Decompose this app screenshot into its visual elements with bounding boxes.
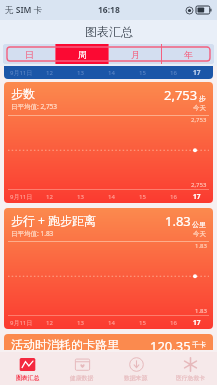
staticText: 无 SIM 卡 — [5, 4, 43, 16]
button[interactable]: 步行 + 跑步距离 — [4, 208, 213, 329]
staticText: 2,753 — [191, 181, 207, 189]
button[interactable]: 健康数据 — [55, 352, 109, 385]
staticText: 17 — [193, 318, 201, 327]
staticText: 千卡 — [192, 340, 206, 349]
staticText: 健康数据 — [70, 374, 94, 381]
staticText: 日平均值: 1.83 — [11, 229, 54, 238]
staticText: 9月11日 — [10, 193, 33, 201]
staticText: 12 — [46, 69, 53, 77]
staticText: 15 — [139, 319, 146, 327]
staticText: 12 — [46, 319, 53, 327]
staticText: 月 — [131, 49, 140, 60]
staticText: 15 — [139, 193, 146, 201]
staticText: 1.83 — [195, 242, 207, 250]
staticText: 2,753 — [191, 116, 207, 124]
staticText: 17 — [193, 68, 201, 77]
staticText: 步行 + 跑步距离 — [11, 212, 97, 228]
staticText: 1.83 — [165, 212, 191, 230]
button[interactable]: 年 — [162, 44, 214, 64]
staticText: 14 — [108, 193, 115, 201]
staticText: 16:18 — [98, 4, 120, 16]
staticText: 今天 — [193, 230, 206, 238]
staticText: 数据来源 — [124, 374, 148, 381]
staticText: 图表汇总 — [85, 24, 133, 39]
staticText: 日平均值: 2,753 — [11, 102, 58, 111]
button[interactable]: 医疗急救卡 — [163, 352, 217, 385]
button[interactable]: 日 — [3, 44, 55, 64]
staticText: 周 — [78, 49, 87, 60]
staticText: 120.35 — [150, 337, 191, 350]
staticText: 1.83 — [195, 307, 207, 315]
staticText: 12 — [46, 193, 53, 201]
staticText: 活动时消耗的卡路里 — [11, 337, 150, 350]
staticText: 公里 — [192, 220, 206, 229]
button[interactable]: 活动时消耗的卡路里 — [4, 334, 213, 350]
staticText: 图表汇总 — [16, 374, 40, 381]
staticText: 16 — [170, 69, 177, 77]
staticText: 步 — [199, 94, 206, 103]
staticText: 16 — [170, 193, 177, 201]
staticText: 15 — [139, 69, 146, 77]
staticText: 16 — [170, 319, 177, 327]
staticText: 日 — [25, 49, 34, 60]
staticText: 今天 — [193, 104, 206, 112]
button[interactable]: 步数 — [4, 82, 213, 203]
staticText: 13 — [77, 193, 84, 201]
staticText: 9月11日 — [10, 69, 33, 77]
staticText: 9月11日 — [10, 319, 33, 327]
staticText: 医疗急救卡 — [176, 374, 205, 381]
staticText: 14 — [108, 319, 115, 327]
button[interactable]: 月 — [109, 44, 161, 64]
staticText: 17 — [193, 192, 201, 201]
staticText: 步数 — [11, 86, 35, 101]
staticText: 年 — [184, 49, 193, 60]
button[interactable]: 9月11日 — [4, 66, 213, 79]
button[interactable]: 图表汇总 — [0, 352, 55, 385]
staticText: 13 — [77, 319, 84, 327]
staticText: 14 — [108, 69, 115, 77]
button[interactable]: 数据来源 — [109, 352, 163, 385]
staticText: 13 — [77, 69, 84, 77]
staticText: 2,753 — [164, 86, 198, 104]
button[interactable]: 周 — [56, 44, 108, 64]
